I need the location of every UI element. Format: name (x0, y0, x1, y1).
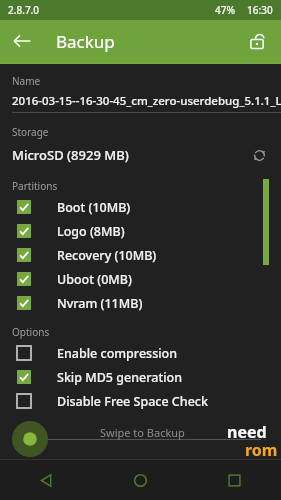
button[interactable]: Unlock (239, 23, 275, 59)
staticText: Enable compression (57, 345, 178, 362)
staticText: Swipe to Backup (100, 425, 185, 440)
button[interactable]: Nvram (11MB) (0, 291, 281, 315)
staticText: Logo (8MB) (57, 223, 125, 240)
button[interactable]: Back (4, 23, 40, 59)
staticText: 47% (215, 3, 235, 17)
staticText: Disable Free Space Check (57, 393, 208, 410)
button[interactable]: Disable Free Space Check (0, 389, 281, 413)
button[interactable]: Recent apps (187, 460, 281, 500)
staticText: Skip MD5 generation (57, 369, 183, 386)
button[interactable]: Logo (8MB) (0, 219, 281, 243)
staticText: rom (245, 439, 278, 457)
staticText: Nvram (11MB) (57, 295, 143, 312)
button[interactable]: Enable compression (0, 341, 281, 365)
button[interactable]: Swipe to Backup (12, 421, 48, 457)
staticText: Uboot (0MB) (57, 271, 132, 288)
button[interactable]: Home (93, 460, 187, 500)
staticText: 16:30 (247, 3, 273, 17)
staticText: Options (12, 325, 50, 339)
staticText: MicroSD (8929 MB) (12, 146, 245, 164)
staticText: Boot (10MB) (57, 199, 131, 216)
staticText: Backup (56, 30, 115, 53)
button[interactable]: Back (0, 460, 93, 500)
staticText: Storage (12, 125, 49, 139)
staticText: Name (12, 74, 41, 88)
button[interactable]: Skip MD5 generation (0, 365, 281, 389)
staticText: 2016-03-15--16-30-45_cm_zero-userdebug_5… (12, 93, 281, 109)
staticText: 2.8.7.0 (8, 3, 40, 17)
button[interactable]: Recovery (10MB) (0, 243, 281, 267)
button[interactable]: Uboot (0MB) (0, 267, 281, 291)
staticText: need (227, 421, 267, 443)
button[interactable]: Refresh storage (245, 143, 273, 167)
button[interactable]: Boot (10MB) (0, 195, 281, 219)
staticText: Partitions (12, 179, 58, 193)
staticText: Recovery (10MB) (57, 247, 157, 264)
